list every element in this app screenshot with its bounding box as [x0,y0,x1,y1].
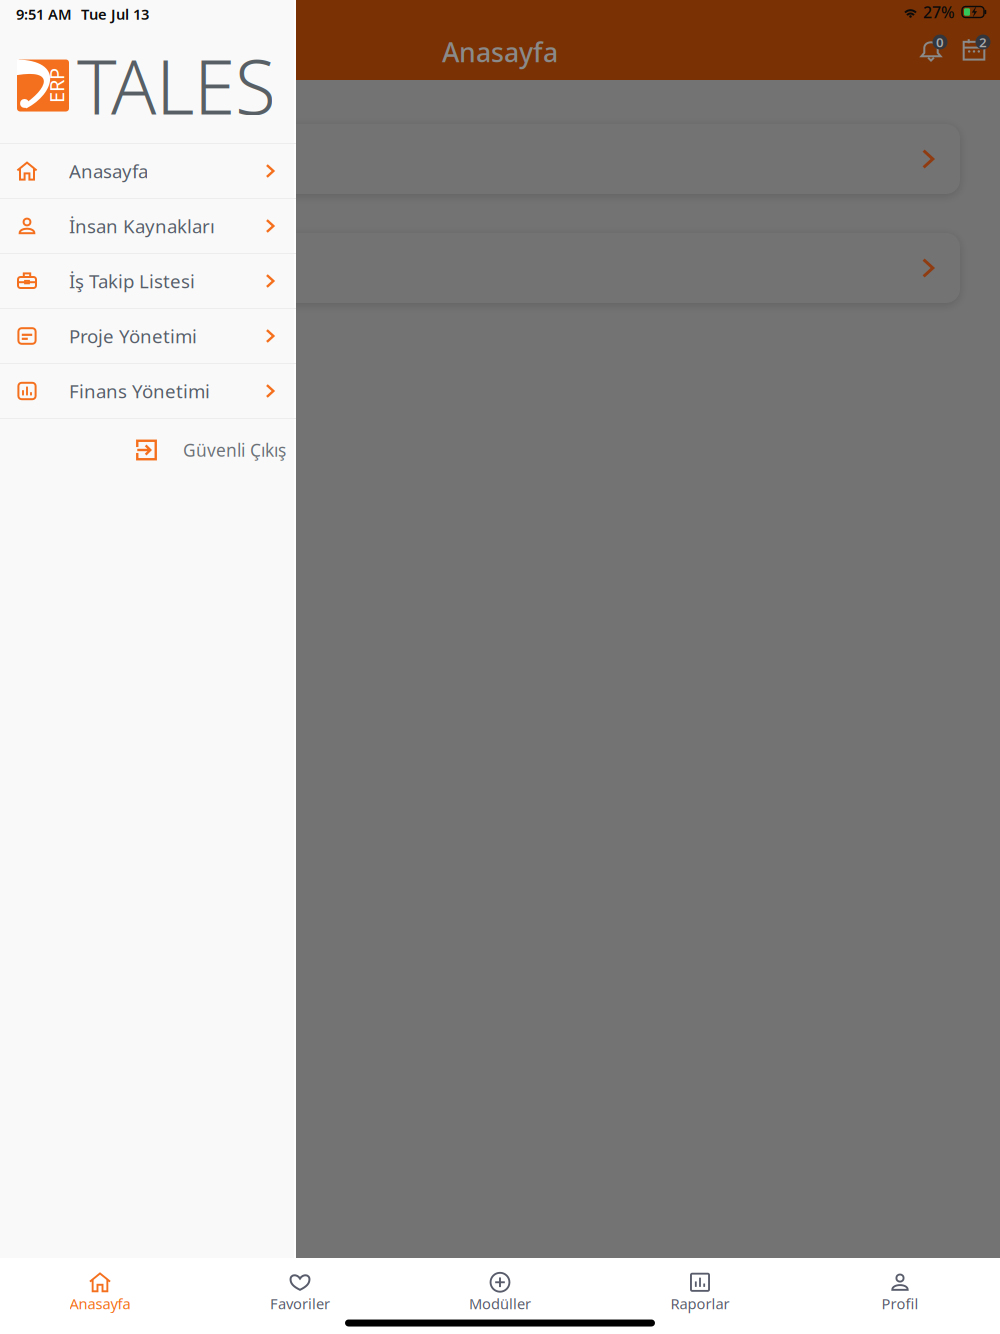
button[interactable]: İş Takip Listesi [0,254,296,309]
staticText: İnsan Kaynakları [69,214,215,238]
staticText: Anasayfa [69,1294,130,1313]
staticText: TALES [77,36,276,135]
staticText: Güvenli Çıkış [183,438,286,461]
staticText: Anasayfa [442,34,558,70]
button[interactable]: İnsan Kaynakları [0,199,296,254]
staticText: İş Takip Listesi [69,269,195,293]
staticText: Favoriler [270,1294,330,1313]
button[interactable]: Finans Yönetimi [0,364,296,419]
staticText: 9:51 AM [16,4,72,24]
button[interactable]: Bildirimler [910,29,952,71]
button[interactable]: Favoriler [200,1257,400,1319]
staticText: Tue Jul 13 [81,4,149,24]
staticText: Profil [881,1294,918,1313]
button[interactable]: Modüller [400,1257,600,1319]
staticText: 27% [923,1,955,23]
staticText: 2 [979,33,987,51]
button[interactable]: Raporlar [600,1257,800,1319]
staticText: ERP [39,72,74,99]
button[interactable]: Anasayfa [0,1257,200,1319]
button[interactable]: Proje Yönetimi [0,309,296,364]
staticText: Raporlar [670,1294,729,1313]
button[interactable]: Takvim [953,29,995,71]
staticText: Proje Yönetimi [69,324,197,348]
button[interactable] [40,124,960,194]
staticText: Anasayfa [69,159,148,183]
button[interactable] [40,233,960,303]
staticText: Modüller [469,1294,531,1313]
staticText: Finans Yönetimi [69,379,210,403]
button[interactable]: Anasayfa [0,144,296,199]
staticText: 0 [936,33,944,51]
button[interactable]: Profil [800,1257,1000,1319]
button[interactable]: Güvenli Çıkış [0,419,296,481]
